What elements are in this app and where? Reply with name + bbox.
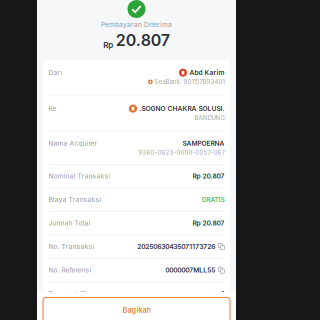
staticText: Bagikan [122,306,150,314]
staticText: Nominal Transaksi [48,172,110,180]
staticText: Pembayaran Diterima [101,20,172,29]
staticText: GRATIS [201,196,224,204]
staticText: Abd Karim [189,69,224,77]
staticText: Jumlah Total [48,219,90,227]
staticText: Biaya Transaksi [48,196,101,204]
staticText: 20.807 [116,31,170,50]
staticText: Nama Acquirer [48,139,97,147]
staticText: 20250630435071173726 [137,243,215,251]
staticText: 9360-0623-0000-0057-067 [138,149,224,156]
button[interactable]: Salin No. Referensi [218,267,224,273]
staticText: 1 [221,290,224,298]
staticText: Dari [48,69,62,77]
staticText: No. Transaksi [48,243,94,251]
staticText: SAMPOERNA [182,139,224,147]
staticText: SeaBank: 901157993491 [154,78,224,85]
staticText: Rp [103,40,113,50]
staticText: Rp 20.807 [192,172,224,180]
button[interactable]: Bagikan [43,297,230,320]
button[interactable]: Salin No. Transaksi [218,244,224,250]
staticText: Terminal ID [48,290,86,298]
staticText: Ke [48,105,56,113]
staticText: BANDUNG [194,114,224,121]
staticText: 0000007MLL55 [165,266,215,274]
staticText: .SOGNO CHAKRA SOLUSI. [139,105,224,113]
staticText: Rp 20.807 [192,219,224,227]
staticText: No. Referensi [48,266,91,274]
